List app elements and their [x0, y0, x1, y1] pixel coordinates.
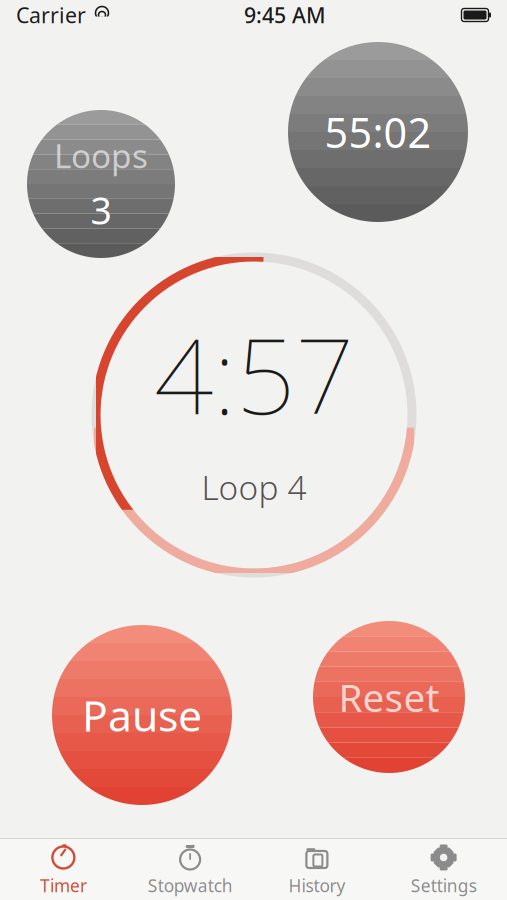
button[interactable]: Settings: [380, 837, 507, 900]
staticText: 4:57: [154, 305, 354, 443]
staticText: Stopwatch: [148, 874, 233, 897]
staticText: Loops: [54, 133, 148, 177]
button[interactable]: Timer: [0, 837, 127, 900]
staticText: 55:02: [324, 105, 431, 159]
staticText: Carrier: [16, 1, 86, 29]
staticText: Reset: [338, 671, 439, 723]
staticText: History: [288, 874, 345, 897]
button[interactable]: Stopwatch: [127, 837, 254, 900]
staticText: 9:45 AM: [244, 1, 326, 29]
button[interactable]: Reset: [313, 621, 465, 773]
staticText: Loop 4: [201, 465, 306, 509]
staticText: Settings: [411, 874, 477, 897]
staticText: Timer: [40, 874, 87, 897]
staticText: 3: [90, 185, 111, 235]
button[interactable]: Pause: [52, 625, 232, 805]
staticText: Pause: [82, 687, 202, 743]
button[interactable]: History: [253, 837, 380, 900]
